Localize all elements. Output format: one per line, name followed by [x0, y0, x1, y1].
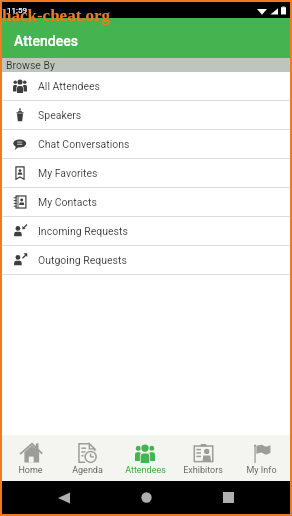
staticText: Attendees: [14, 33, 78, 49]
staticText: Chat Conversations: [38, 138, 130, 150]
button[interactable]: Back: [23, 481, 105, 514]
button[interactable]: My Favorites: [2, 159, 290, 188]
staticText: Agenda: [72, 465, 103, 476]
button[interactable]: All Attendees: [2, 72, 290, 101]
staticText: All Attendees: [38, 80, 101, 92]
staticText: Outgoing Requests: [38, 254, 127, 266]
button[interactable]: Incoming Requests: [2, 217, 290, 246]
button[interactable]: Home: [2, 435, 59, 481]
button[interactable]: My Info: [232, 435, 290, 481]
button[interactable]: Exhibitors: [174, 435, 232, 481]
staticText: My Contacts: [38, 196, 97, 208]
staticText: Exhibitors: [183, 465, 223, 476]
staticText: Home: [18, 465, 43, 476]
button[interactable]: My Contacts: [2, 188, 290, 217]
staticText: hack-cheat.org: [2, 6, 111, 25]
staticText: 11:59: [7, 6, 27, 15]
staticText: My Favorites: [38, 167, 98, 179]
staticText: Incoming Requests: [38, 225, 128, 237]
button[interactable]: Agenda: [59, 435, 116, 481]
button[interactable]: Speakers: [2, 101, 290, 130]
staticText: Browse By: [6, 59, 55, 71]
button[interactable]: Chat Conversations: [2, 130, 290, 159]
button[interactable]: Attendees: [116, 435, 174, 481]
button[interactable]: Outgoing Requests: [2, 246, 290, 275]
staticText: My Info: [246, 465, 277, 476]
staticText: Attendees: [125, 465, 166, 476]
staticText: Speakers: [38, 109, 82, 121]
button[interactable]: Home: [105, 481, 187, 514]
button[interactable]: Recent apps: [187, 481, 269, 514]
